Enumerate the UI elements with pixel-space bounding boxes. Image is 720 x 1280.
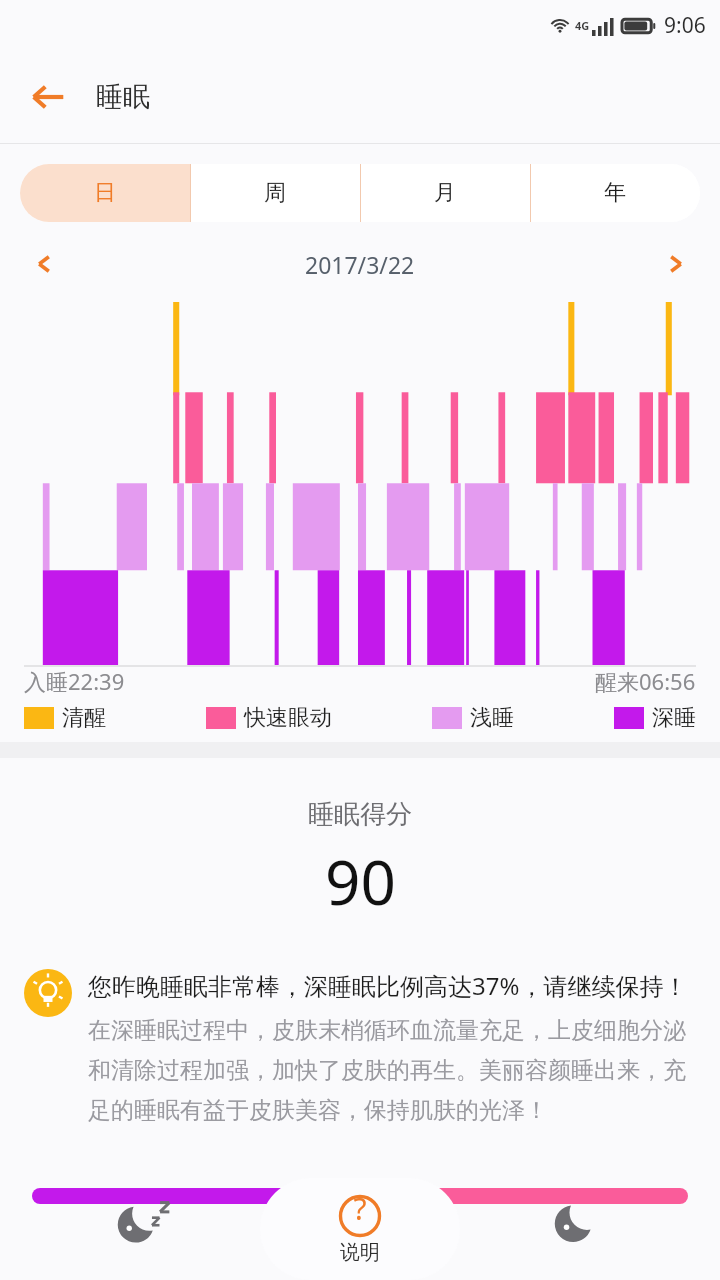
staticText: 快速眼动 <box>244 704 332 732</box>
button[interactable]: 年 <box>530 164 700 222</box>
button[interactable]: 说明 <box>260 1178 460 1280</box>
staticText: 入睡22:39 <box>24 666 125 696</box>
staticText: 4G <box>575 18 590 33</box>
staticText: 睡眠 <box>96 80 150 114</box>
button[interactable]: Sleep with Zs <box>110 1185 180 1255</box>
button[interactable]: Next day <box>654 242 698 286</box>
staticText: 日 <box>94 179 116 207</box>
staticText: 年 <box>604 179 626 207</box>
staticText: 醒来06:56 <box>595 666 696 696</box>
staticText: 您昨晚睡眠非常棒，深睡眠比例高达37%，请继续保持！ <box>88 969 688 1002</box>
staticText: 深睡 <box>652 704 696 732</box>
staticText: 清醒 <box>62 704 106 732</box>
staticText: 2017/3/22 <box>305 249 415 280</box>
button[interactable]: 月 <box>360 164 530 222</box>
staticText: 9:06 <box>664 11 706 40</box>
staticText: ? <box>353 1188 367 1229</box>
button[interactable]: Moon <box>540 1185 610 1255</box>
staticText: 周 <box>264 179 286 207</box>
staticText: 睡眠得分 <box>308 798 412 831</box>
staticText: 90 <box>325 839 396 923</box>
button[interactable]: 周 <box>190 164 360 222</box>
button[interactable]: Back <box>22 71 74 123</box>
button[interactable]: 日 <box>20 164 190 222</box>
staticText: 浅睡 <box>470 704 514 732</box>
button[interactable]: Previous day <box>22 242 66 286</box>
staticText: 在深睡眠过程中，皮肤末梢循环血流量充足，上皮细胞分泌和清除过程加强，加快了皮肤的… <box>88 1016 696 1125</box>
staticText: 说明 <box>340 1240 380 1265</box>
staticText: 月 <box>434 179 456 207</box>
